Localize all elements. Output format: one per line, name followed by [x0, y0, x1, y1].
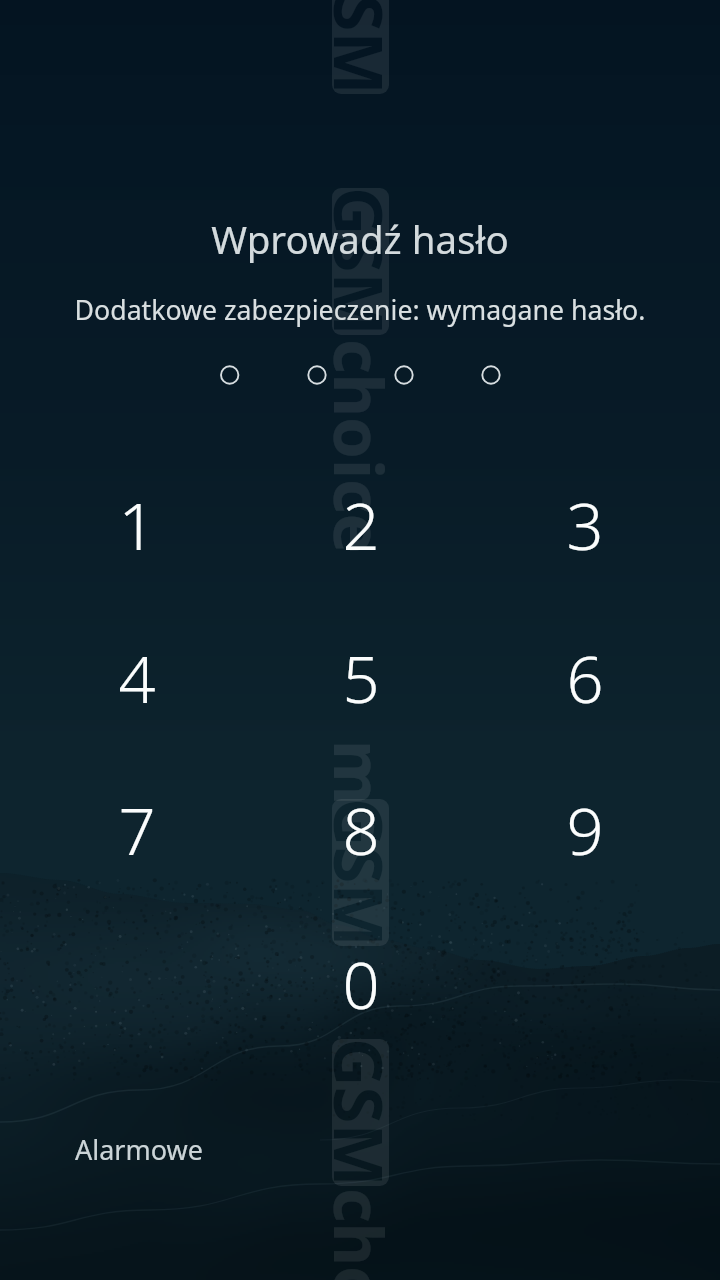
- staticText: Wprowadź hasło: [0, 213, 720, 1280]
- staticText: 7: [118, 786, 156, 875]
- staticText: 8: [342, 786, 380, 875]
- button[interactable]: 6: [473, 602, 697, 754]
- button[interactable]: 3: [473, 449, 697, 601]
- button[interactable]: 2: [249, 449, 473, 601]
- button[interactable]: 1: [25, 449, 249, 601]
- button[interactable]: 4: [25, 602, 249, 754]
- staticText: 5: [342, 634, 380, 723]
- staticText: Dodatkowe zabezpieczenie: wymagane hasło…: [0, 291, 720, 1280]
- staticText: 1: [118, 481, 156, 570]
- button[interactable]: 0: [249, 908, 473, 1060]
- staticText: 2: [342, 481, 380, 570]
- staticText: 4: [118, 634, 156, 723]
- button[interactable]: Alarmowe: [60, 1121, 219, 1178]
- button[interactable]: 7: [25, 754, 249, 906]
- staticText: 6: [566, 634, 604, 723]
- button[interactable]: 9: [473, 754, 697, 906]
- staticText: 3: [566, 481, 604, 570]
- staticText: Alarmowe: [75, 1131, 204, 1168]
- staticText: 0: [342, 940, 380, 1029]
- staticText: 9: [566, 786, 604, 875]
- button[interactable]: 8: [249, 754, 473, 906]
- button[interactable]: 5: [249, 602, 473, 754]
